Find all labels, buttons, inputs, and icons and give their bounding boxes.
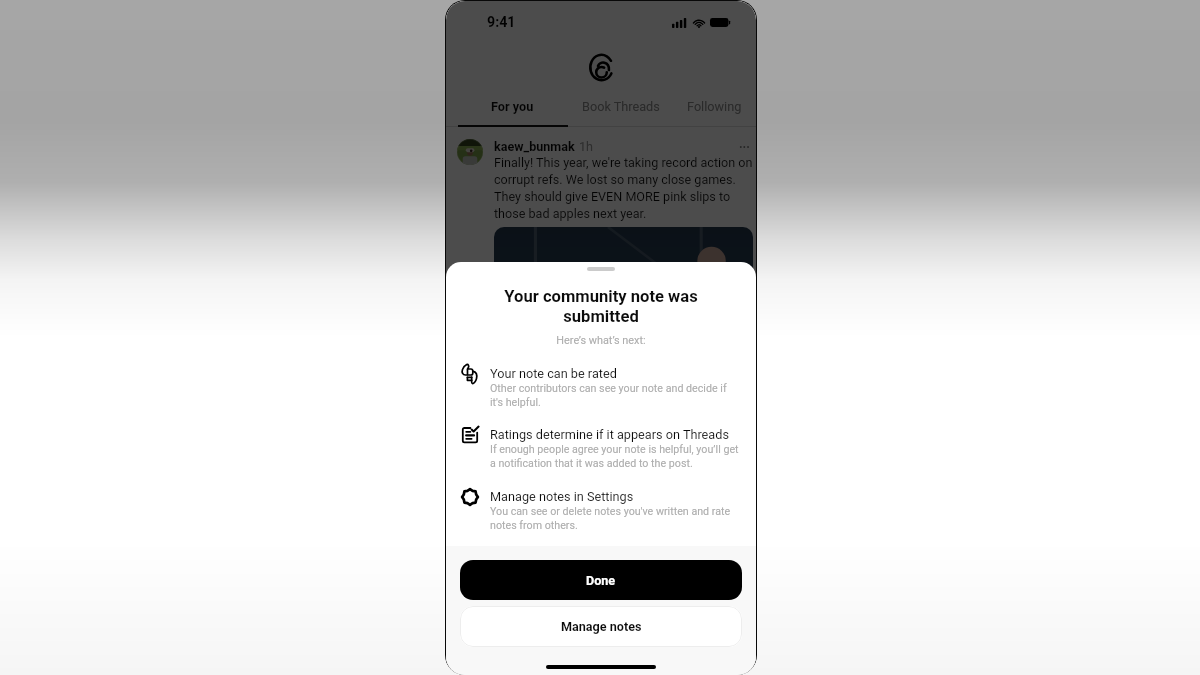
staticText: Finally! This year, we're taking record … xyxy=(494,155,753,221)
staticText: If enough people agree your note is help… xyxy=(490,443,742,469)
button[interactable]: Following xyxy=(672,87,756,127)
staticText: For you xyxy=(491,99,534,114)
staticText: Ratings determine if it appears on Threa… xyxy=(490,427,729,442)
button[interactable]: Manage notes xyxy=(460,606,742,647)
staticText: You can see or delete notes you've writt… xyxy=(490,505,742,531)
button[interactable]: For you xyxy=(446,87,579,127)
staticText: Other contributors can see your note and… xyxy=(490,382,742,408)
staticText: Your community note was submitted xyxy=(490,287,712,326)
staticText: kaew_bunmak xyxy=(494,139,575,154)
staticText: 1h xyxy=(579,139,594,154)
staticText: Done xyxy=(586,573,616,588)
button[interactable]: Done xyxy=(460,560,742,600)
staticText: Manage notes xyxy=(561,619,642,634)
staticText: ··· xyxy=(739,140,750,154)
staticText: Following xyxy=(687,99,742,114)
staticText: 9:41 xyxy=(487,14,516,31)
staticText: Book Threads xyxy=(582,99,660,114)
staticText: Manage notes in Settings xyxy=(490,489,634,504)
button[interactable]: Book Threads xyxy=(579,87,663,127)
staticText: Your note can be rated xyxy=(490,366,617,381)
staticText: Here’s what’s next: xyxy=(446,334,756,347)
